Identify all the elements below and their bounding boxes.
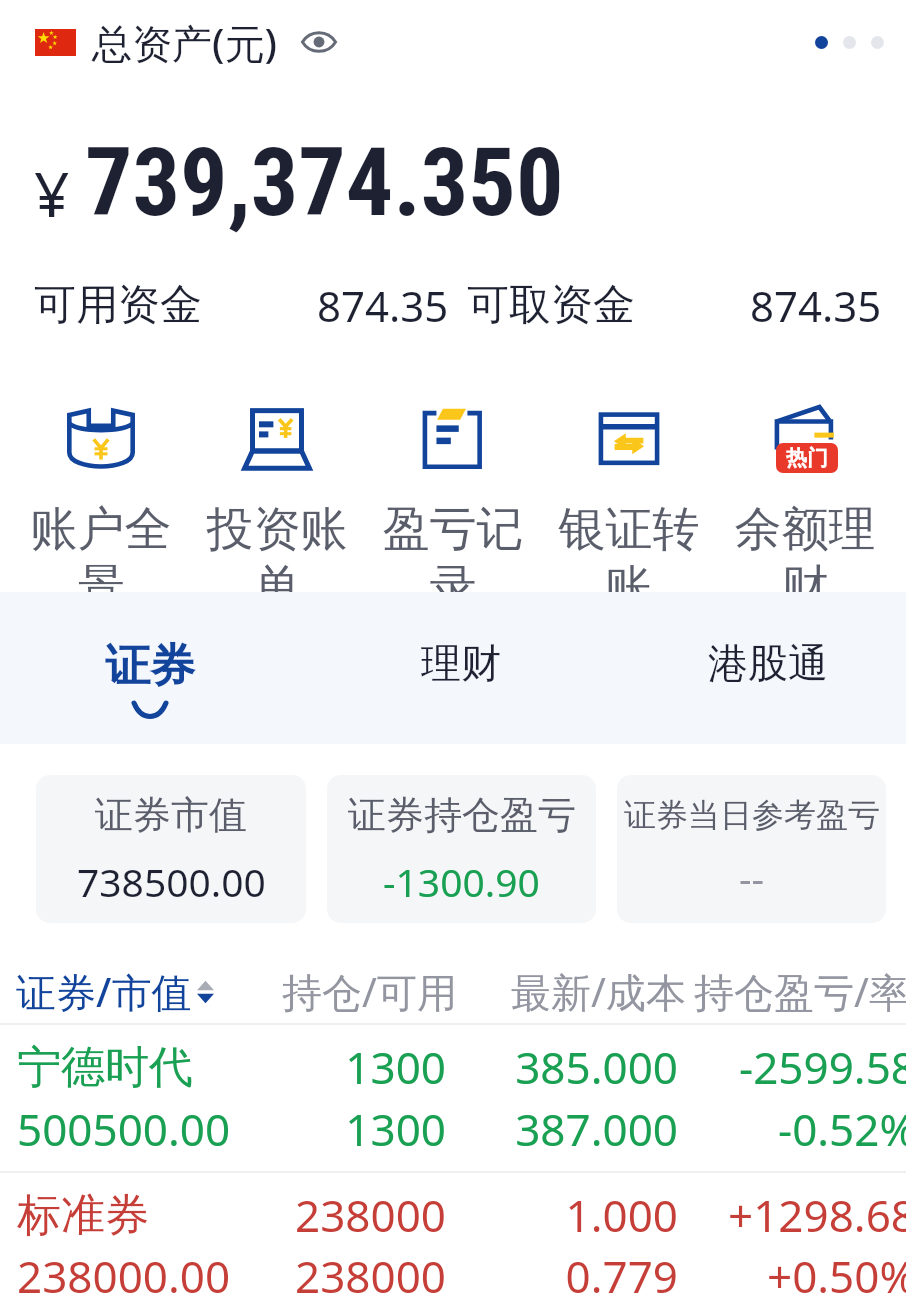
staticText: -0.52% — [712, 1099, 906, 1159]
staticText: 证券持仓盈亏 — [348, 791, 576, 839]
button[interactable]: 港股通 — [678, 638, 858, 688]
staticText: -2599.58 — [712, 1037, 906, 1097]
button[interactable]: 证券市值 — [36, 775, 306, 923]
staticText: 0.779 — [480, 1246, 678, 1295]
staticText: 739,374.350 — [85, 128, 564, 238]
staticText: 738500.00 — [77, 855, 266, 908]
staticText: 238000.00 — [17, 1246, 231, 1295]
staticText: 账户全景 — [13, 500, 189, 592]
button[interactable]: Toggle balance visibility — [297, 20, 341, 64]
staticText: 盈亏记录 — [365, 500, 541, 592]
staticText: 874.35 — [317, 277, 449, 334]
staticText: 可取资金 — [467, 279, 635, 332]
button[interactable]: 盈亏记录 — [365, 402, 541, 592]
button[interactable]: 热门 — [717, 402, 893, 592]
staticText: 874.35 — [750, 277, 882, 334]
staticText: 1300 — [250, 1099, 446, 1159]
staticText: 投资账单 — [189, 500, 365, 592]
staticText: 银证转账 — [541, 500, 717, 592]
staticText: 总资产(元) — [92, 15, 277, 70]
staticText: -- — [739, 851, 765, 904]
staticText: +1298.68 — [712, 1185, 906, 1245]
staticText: 1.000 — [480, 1185, 678, 1245]
staticText: 证券市值 — [95, 791, 247, 839]
button[interactable]: 证券当日参考盈亏 — [617, 775, 886, 923]
button[interactable]: 账户全景 — [13, 402, 189, 592]
button[interactable]: 宁德时代 — [0, 1025, 906, 1171]
staticText: 证券/市值 — [16, 964, 192, 1019]
staticText: 持仓/可用 — [282, 964, 457, 1019]
staticText: 500500.00 — [17, 1099, 231, 1159]
staticText: 证券当日参考盈亏 — [624, 795, 880, 835]
button[interactable]: 理财 — [371, 638, 551, 688]
staticText: 港股通 — [708, 638, 828, 688]
staticText: 标准券 — [17, 1188, 149, 1243]
staticText: 385.000 — [480, 1037, 678, 1097]
staticText: 可用资金 — [34, 279, 202, 332]
button[interactable]: 证券 — [60, 638, 240, 715]
staticText: 余额理财 — [717, 500, 893, 592]
staticText: 证券 — [105, 638, 195, 695]
staticText: 238000 — [250, 1185, 446, 1245]
staticText: 理财 — [421, 638, 501, 688]
staticText: 持仓盈亏/率 — [694, 964, 906, 1019]
staticText: 238000 — [250, 1246, 446, 1295]
staticText: -1300.90 — [383, 855, 540, 908]
button[interactable]: 标准券 — [0, 1173, 906, 1306]
button[interactable]: 证券持仓盈亏 — [327, 775, 596, 923]
staticText: 1300 — [250, 1037, 446, 1097]
staticText: ¥ — [34, 151, 70, 235]
button[interactable]: 投资账单 — [189, 402, 365, 592]
staticText: 最新/成本 — [511, 964, 686, 1019]
staticText: 热门 — [786, 445, 828, 471]
staticText: +0.50% — [712, 1246, 906, 1295]
button[interactable]: 银证转账 — [541, 402, 717, 592]
staticText: 宁德时代 — [17, 1040, 193, 1095]
staticText: 387.000 — [480, 1099, 678, 1159]
